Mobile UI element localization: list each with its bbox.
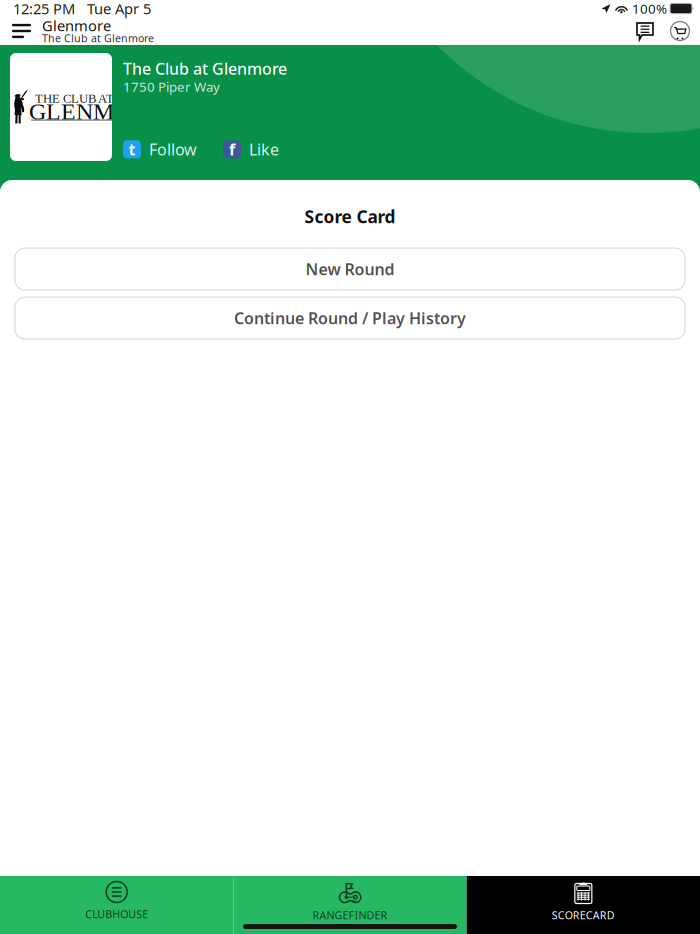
button[interactable]: Messages <box>630 22 660 40</box>
staticText: The Club at Glenmore <box>42 31 154 45</box>
staticText: 100% <box>632 0 667 17</box>
staticText: New Round <box>305 258 394 280</box>
staticText: Like <box>249 139 279 160</box>
staticText: Score Card <box>304 205 395 228</box>
button[interactable]: RANGEFINDER <box>233 876 467 934</box>
button[interactable]: New Round <box>15 248 685 290</box>
button[interactable]: Menu <box>0 17 42 44</box>
staticText: RANGEFINDER <box>312 908 387 922</box>
button[interactable]: t <box>123 139 197 160</box>
staticText: t <box>128 139 135 160</box>
button[interactable]: Continue Round / Play History <box>15 297 685 339</box>
button[interactable]: CLUBHOUSE <box>0 876 233 934</box>
staticText: Tue Apr 5 <box>75 0 151 18</box>
staticText: Glenmore <box>42 16 111 35</box>
staticText: CLUBHOUSE <box>85 907 148 921</box>
staticText: THE CLUB AT <box>35 91 114 105</box>
staticText: SCORECARD <box>552 908 615 922</box>
button[interactable]: SCORECARD <box>467 876 700 934</box>
staticText: 12:25 PM <box>13 0 75 18</box>
staticText: The Club at Glenmore <box>123 58 287 79</box>
button[interactable]: Shop <box>660 21 700 41</box>
button[interactable]: f <box>223 139 279 160</box>
staticText: Follow <box>149 139 197 160</box>
staticText: 1750 Piper Way <box>123 78 220 95</box>
staticText: Continue Round / Play History <box>234 307 466 329</box>
staticText: f <box>229 139 235 160</box>
staticText: GLENMORE <box>29 98 162 125</box>
